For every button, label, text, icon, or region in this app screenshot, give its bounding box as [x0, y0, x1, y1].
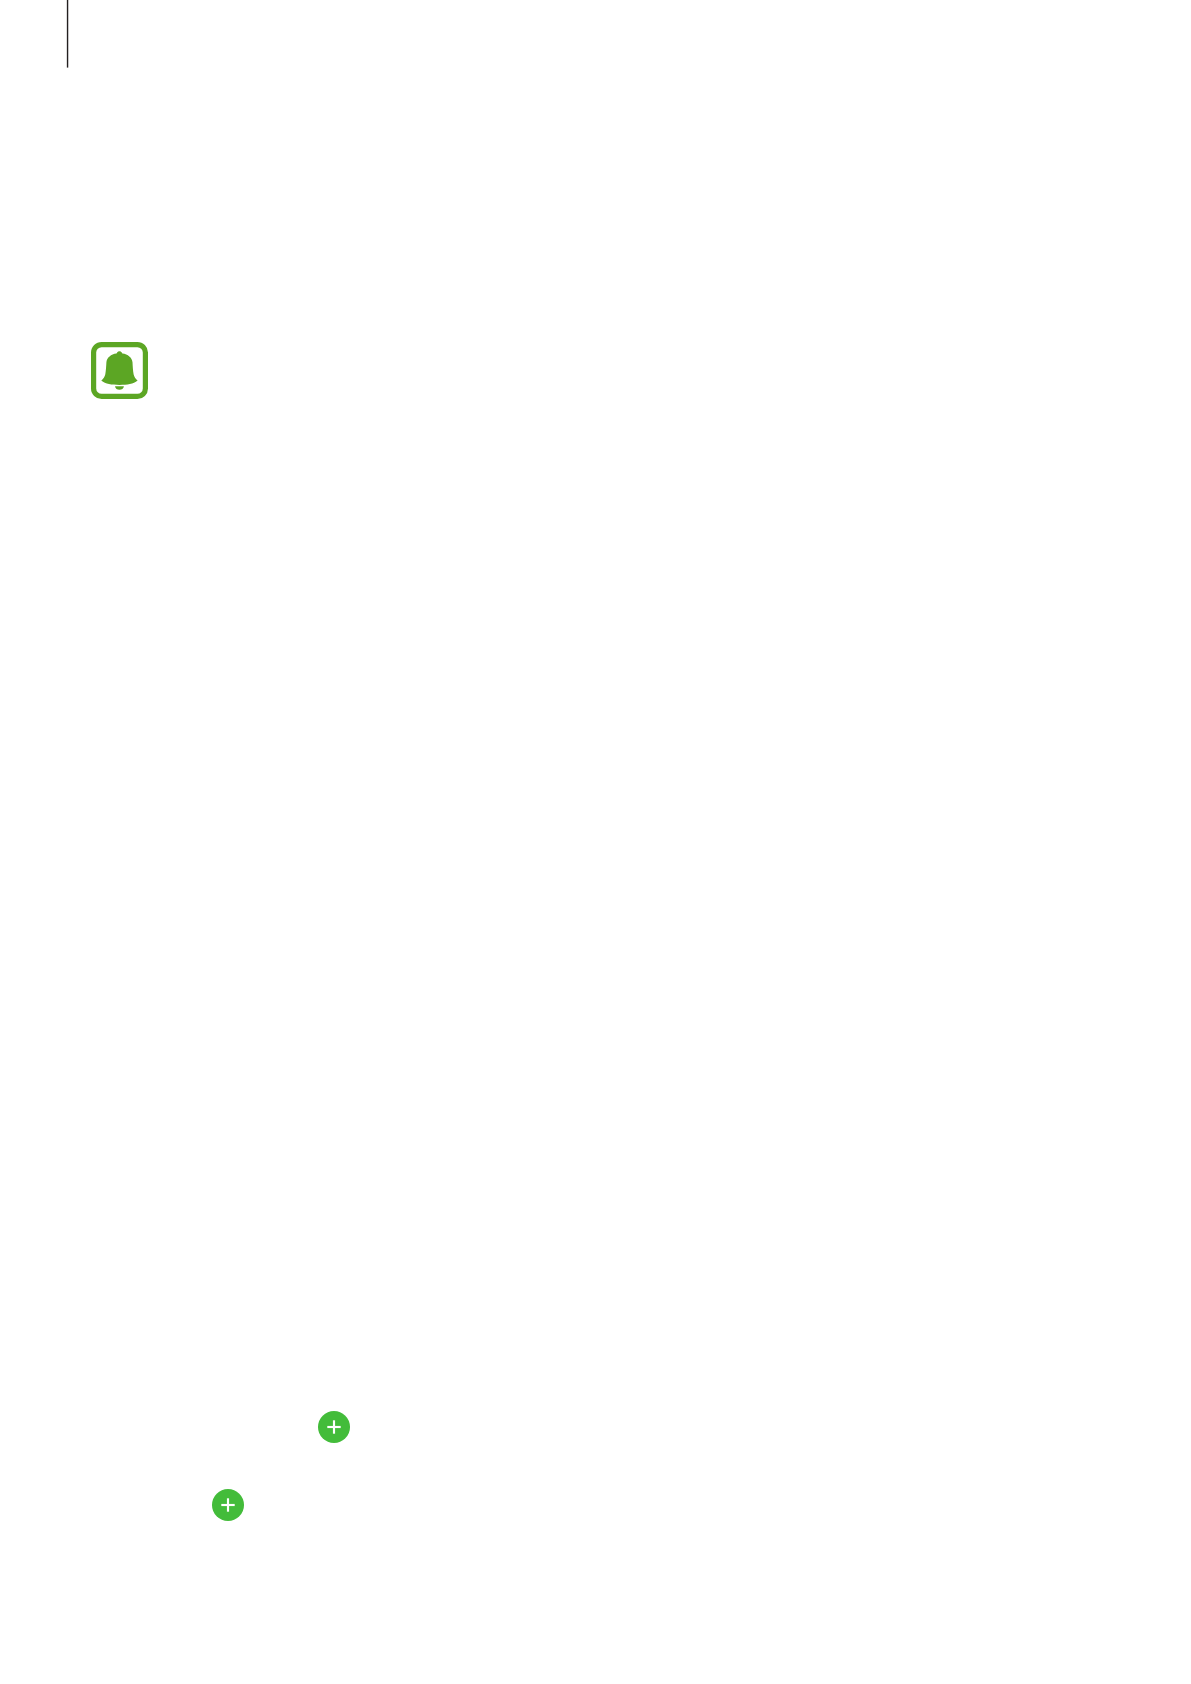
button[interactable]: Add	[318, 1411, 350, 1443]
button[interactable]: Add	[212, 1489, 244, 1521]
button[interactable]: Notifications	[91, 342, 148, 399]
